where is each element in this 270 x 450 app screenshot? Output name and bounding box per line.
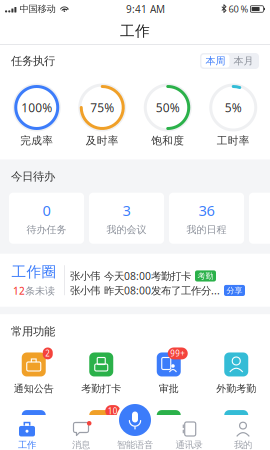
- staticText: 2: [45, 348, 50, 359]
- staticText: 5%: [225, 99, 242, 116]
- button[interactable]: 36: [169, 193, 244, 244]
- button[interactable]: 通讯录: [202, 410, 270, 450]
- staticText: 9:41 AM: [126, 2, 165, 16]
- staticText: 审批: [159, 382, 179, 395]
- button[interactable]: 通讯录: [162, 421, 216, 450]
- staticText: 60 %: [226, 3, 248, 15]
- staticText: 我的任务: [149, 440, 189, 450]
- button[interactable]: 99+: [135, 352, 202, 395]
- staticText: 本周: [205, 55, 225, 67]
- staticText: 张小伟: [70, 284, 100, 297]
- button[interactable]: 3: [89, 193, 164, 244]
- button[interactable]: 工作报告: [0, 410, 67, 450]
- staticText: 通知公告: [14, 382, 54, 395]
- staticText: 通讯录: [221, 440, 251, 450]
- staticText: 我的: [234, 439, 252, 450]
- staticText: 饱和度: [151, 134, 184, 147]
- staticText: 我的日程: [81, 440, 121, 450]
- button[interactable]: 本月: [229, 54, 257, 67]
- staticText: 50%: [156, 99, 180, 116]
- button[interactable]: 我的任务: [135, 410, 202, 450]
- button[interactable]: 工作: [0, 421, 54, 450]
- staticText: 及时率: [86, 134, 119, 147]
- staticText: 工作: [120, 22, 150, 40]
- staticText: 工作报告: [14, 440, 54, 450]
- staticText: 考勤: [197, 271, 213, 281]
- staticText: 工时率: [217, 134, 250, 147]
- staticText: 任务执行: [11, 54, 55, 68]
- staticText: 工作圈: [11, 263, 56, 281]
- staticText: 36: [198, 200, 214, 220]
- staticText: 99+: [170, 348, 185, 359]
- button[interactable]: 我的: [216, 421, 270, 450]
- staticText: 今天08:00考勤打卡: [104, 269, 191, 283]
- staticText: 完成率: [20, 134, 53, 147]
- staticText: 100%: [21, 99, 52, 116]
- staticText: 条未读: [25, 285, 55, 297]
- staticText: 智能语音: [117, 439, 153, 450]
- staticText: 张小伟: [70, 269, 100, 282]
- staticText: 昨天08:00发布了工作分...: [104, 283, 220, 298]
- button[interactable]: 本周: [201, 54, 229, 67]
- button[interactable]: 考勤打卡: [67, 352, 135, 395]
- staticText: 消息: [72, 439, 90, 450]
- staticText: 3: [122, 200, 130, 220]
- staticText: 我的会议: [106, 223, 146, 236]
- staticText: 75%: [90, 99, 114, 116]
- staticText: 考勤打卡: [81, 382, 121, 395]
- button[interactable]: 消息: [54, 421, 108, 450]
- button[interactable]: 10: [67, 410, 135, 450]
- staticText: 今日待办: [11, 169, 55, 184]
- staticText: 分享: [226, 285, 242, 295]
- staticText: 我的日程: [186, 223, 226, 236]
- button[interactable]: 0: [9, 193, 84, 244]
- button[interactable]: 智能语音: [108, 421, 162, 450]
- button[interactable]: 外勤考勤: [202, 352, 270, 395]
- staticText: 10: [108, 406, 118, 416]
- button[interactable]: 2: [0, 352, 67, 395]
- staticText: 外勤考勤: [216, 382, 256, 395]
- staticText: 通讯录: [175, 439, 202, 450]
- staticText: 12: [13, 284, 25, 298]
- staticText: 本月: [233, 55, 253, 67]
- staticText: 中国移动: [16, 3, 55, 15]
- staticText: 待办任务: [26, 223, 66, 236]
- staticText: 工作: [18, 439, 36, 450]
- staticText: 0: [42, 200, 50, 220]
- staticText: 常用功能: [11, 324, 55, 338]
- button[interactable]: 工作圈: [0, 254, 270, 307]
